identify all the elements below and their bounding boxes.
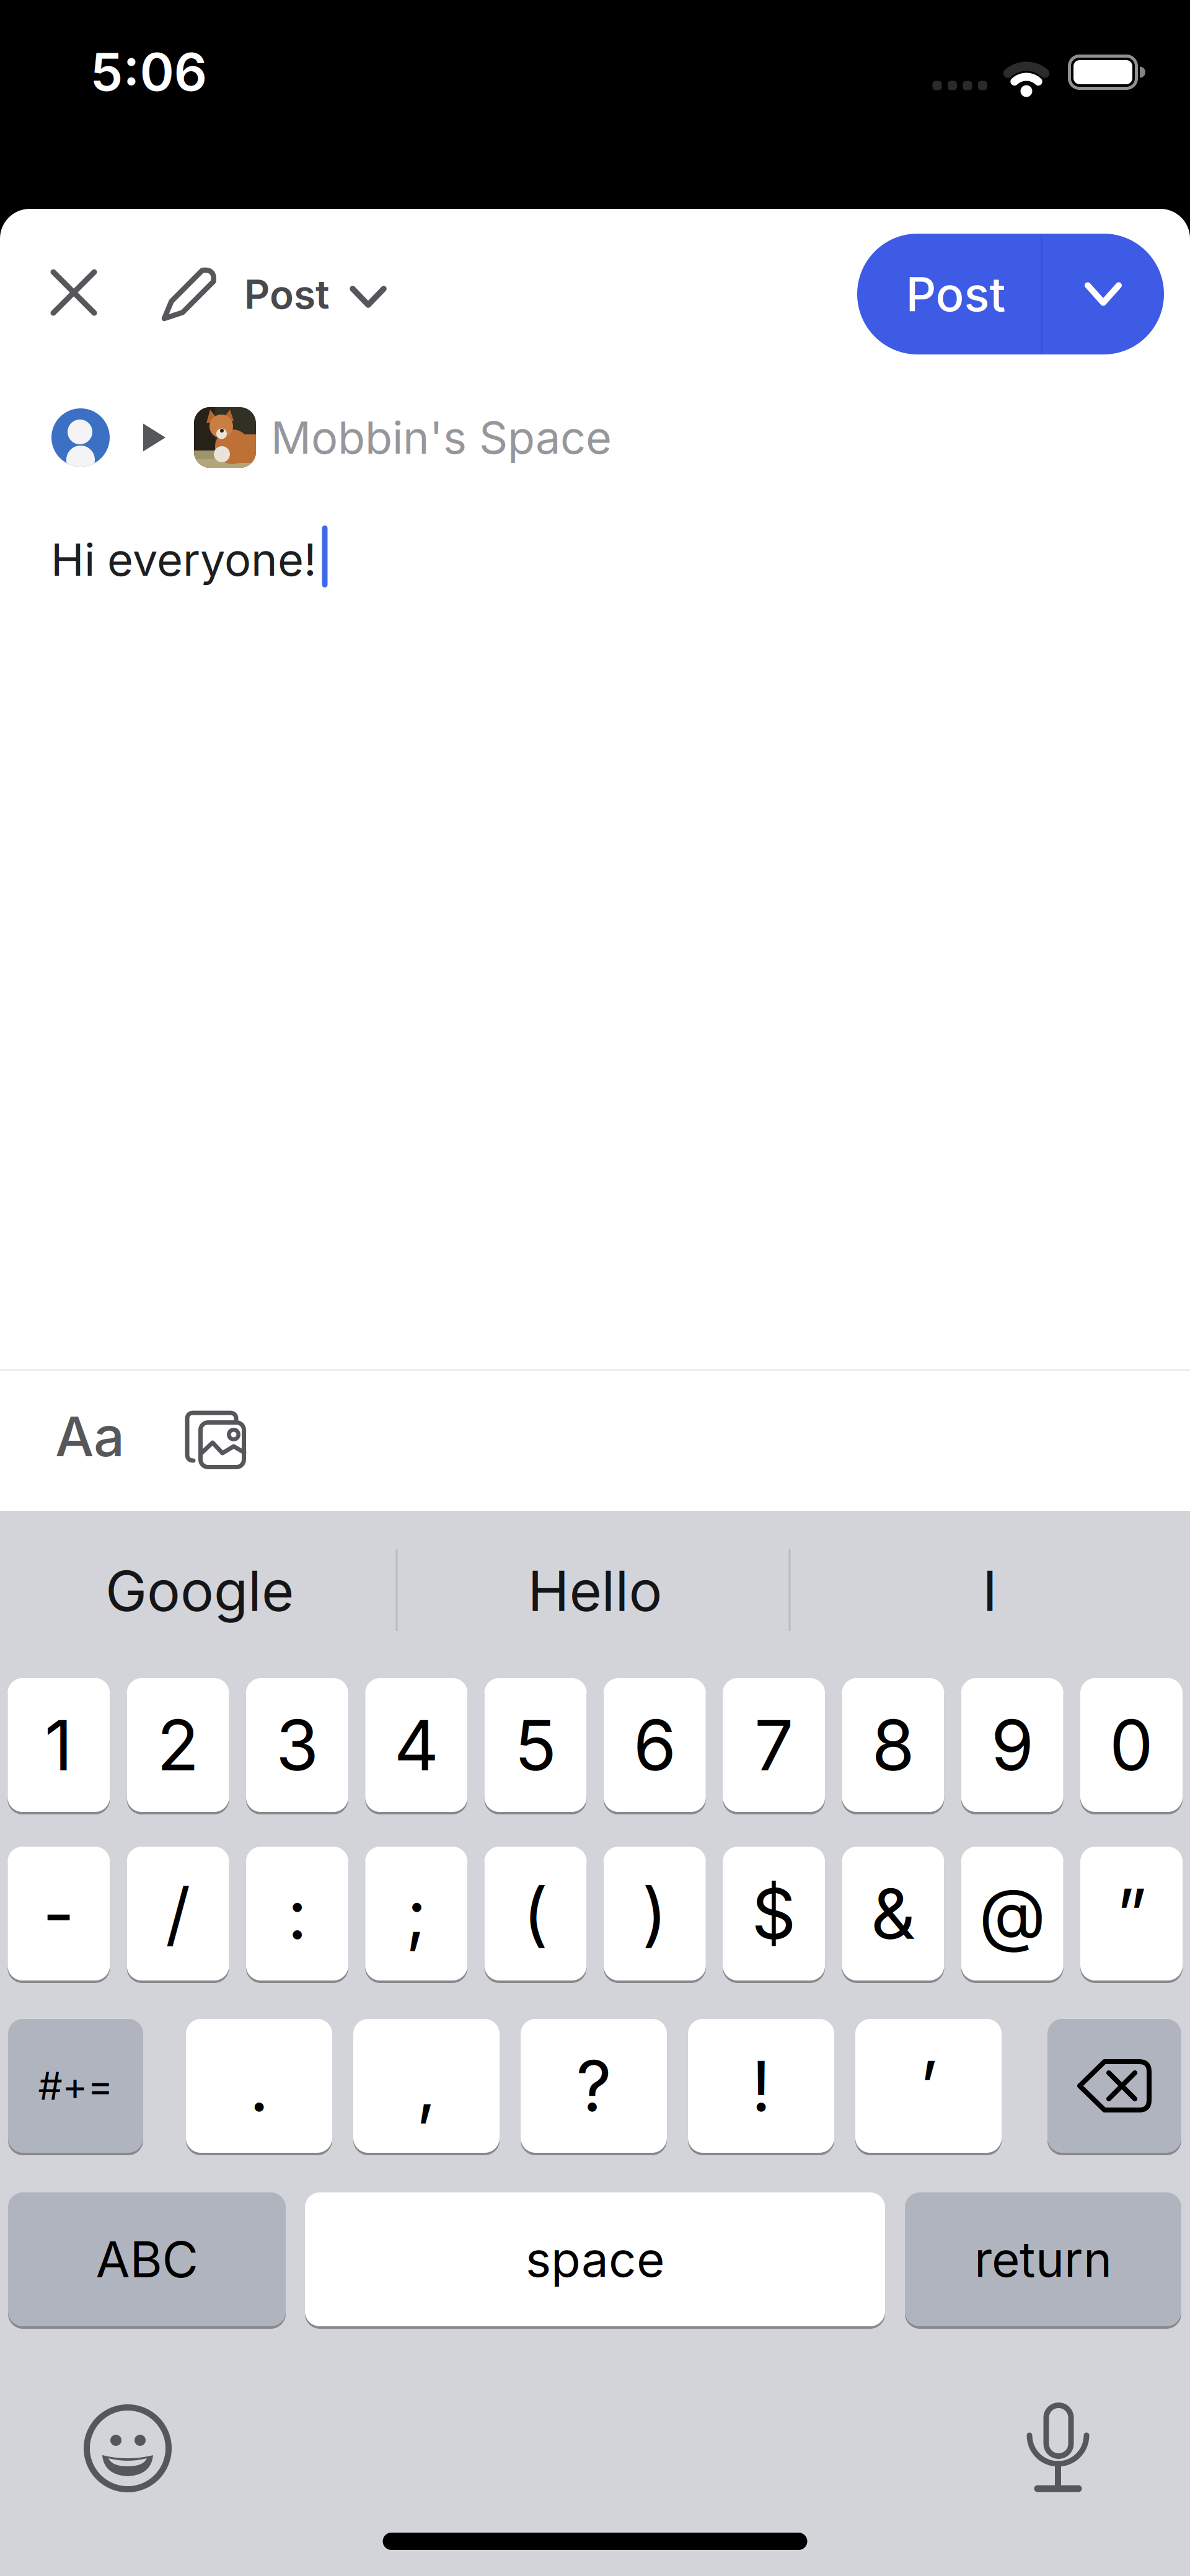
- button[interactable]: 5: [484, 1678, 587, 1812]
- staticText: ”: [1116, 1872, 1147, 1956]
- button[interactable]: return: [905, 2192, 1181, 2326]
- staticText: 3: [276, 1703, 319, 1787]
- button[interactable]: 0: [1080, 1678, 1183, 1812]
- button[interactable]: &: [842, 1847, 944, 1980]
- staticText: 2: [157, 1703, 199, 1787]
- button[interactable]: 2: [127, 1678, 229, 1812]
- staticText: ): [642, 1872, 667, 1956]
- button[interactable]: 7: [723, 1678, 825, 1812]
- button[interactable]: Hello: [421, 1544, 769, 1637]
- staticText: ’: [919, 2044, 937, 2128]
- button[interactable]: More post options: [1042, 234, 1164, 354]
- button[interactable]: /: [127, 1847, 229, 1980]
- staticText: 5: [514, 1703, 557, 1787]
- button[interactable]: @: [961, 1847, 1063, 1980]
- staticText: Aa: [55, 1403, 125, 1469]
- button[interactable]: ’: [855, 2019, 1002, 2153]
- button[interactable]: ): [604, 1847, 706, 1980]
- button[interactable]: 9: [961, 1678, 1063, 1812]
- button[interactable]: ABC: [8, 2192, 286, 2326]
- button[interactable]: 8: [842, 1678, 944, 1812]
- button[interactable]: 1: [8, 1678, 110, 1812]
- button[interactable]: .: [186, 2019, 332, 2153]
- staticText: &: [871, 1872, 915, 1956]
- button[interactable]: ?: [521, 2019, 667, 2153]
- staticText: 9: [991, 1703, 1034, 1787]
- staticText: 0: [1109, 1703, 1153, 1787]
- button[interactable]: Post: [857, 234, 1041, 354]
- button[interactable]: Add photo: [177, 1401, 257, 1478]
- button[interactable]: #+=: [8, 2019, 143, 2153]
- staticText: Hello: [528, 1557, 662, 1624]
- staticText: Post: [906, 266, 1006, 323]
- staticText: Mobbin's Space: [271, 410, 612, 464]
- button[interactable]: ;: [365, 1847, 467, 1980]
- staticText: Hi everyone!: [51, 533, 317, 587]
- staticText: (: [523, 1872, 548, 1956]
- staticText: 7: [754, 1703, 793, 1787]
- staticText: ;: [406, 1872, 427, 1956]
- button[interactable]: Mobbin's Space: [51, 407, 612, 468]
- staticText: -: [43, 1872, 75, 1956]
- button[interactable]: ”: [1080, 1847, 1183, 1980]
- staticText: 1: [45, 1703, 73, 1787]
- button[interactable]: Post: [162, 268, 386, 320]
- button[interactable]: Text style: [46, 1395, 133, 1478]
- staticText: @: [979, 1872, 1046, 1956]
- staticText: .: [249, 2044, 269, 2128]
- button[interactable]: ,: [353, 2019, 500, 2153]
- button[interactable]: I: [816, 1544, 1163, 1637]
- button[interactable]: Close: [37, 256, 110, 329]
- button[interactable]: Delete: [1047, 2019, 1181, 2153]
- button[interactable]: $: [723, 1847, 825, 1980]
- staticText: 8: [872, 1703, 914, 1787]
- button[interactable]: !: [688, 2019, 834, 2153]
- staticText: #+=: [38, 2063, 113, 2109]
- button[interactable]: Dictation: [1021, 2390, 1095, 2500]
- staticText: 5:06: [90, 40, 207, 103]
- button[interactable]: (: [484, 1847, 587, 1980]
- staticText: I: [982, 1557, 997, 1624]
- button[interactable]: 3: [246, 1678, 348, 1812]
- staticText: ,: [416, 2044, 436, 2128]
- button[interactable]: 4: [365, 1678, 467, 1812]
- staticText: $: [752, 1872, 796, 1956]
- staticText: 4: [394, 1703, 439, 1787]
- staticText: return: [974, 2230, 1112, 2289]
- staticText: !: [751, 2044, 771, 2128]
- button[interactable]: Emoji: [75, 2396, 180, 2501]
- staticText: 6: [633, 1703, 676, 1787]
- staticText: :: [287, 1872, 307, 1956]
- staticText: ?: [576, 2044, 611, 2128]
- staticText: Google: [105, 1557, 294, 1624]
- button[interactable]: Google: [26, 1544, 373, 1637]
- staticText: space: [526, 2230, 664, 2289]
- button[interactable]: space: [305, 2192, 885, 2326]
- button[interactable]: -: [8, 1847, 110, 1980]
- button[interactable]: 6: [604, 1678, 706, 1812]
- staticText: ABC: [96, 2229, 198, 2289]
- staticText: Post: [244, 270, 330, 318]
- staticText: /: [166, 1872, 190, 1956]
- button[interactable]: :: [246, 1847, 348, 1980]
